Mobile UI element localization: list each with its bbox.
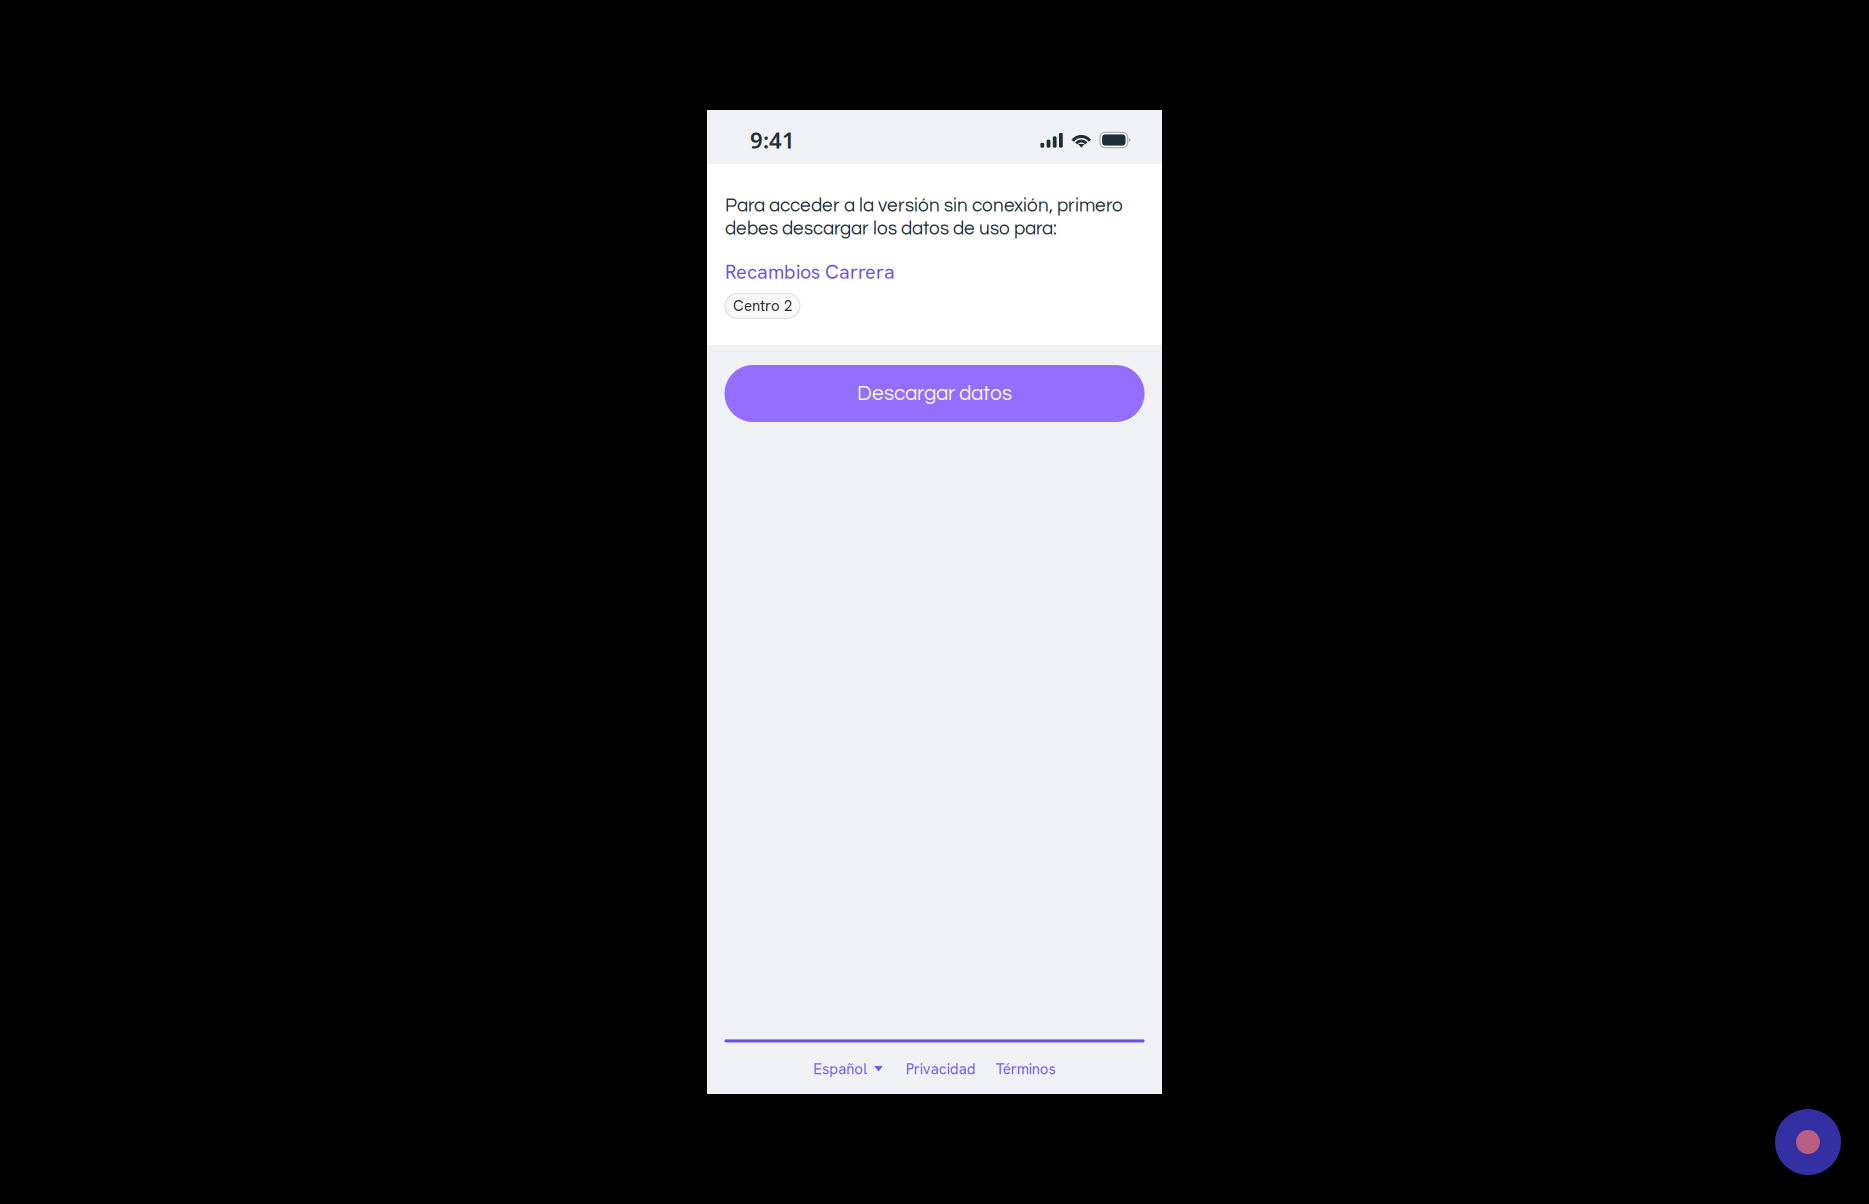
button[interactable]: Descargar datos [724, 365, 1144, 422]
button[interactable]: Record [1775, 1109, 1841, 1175]
staticText: Español [813, 1059, 867, 1079]
staticText: 9:41 [750, 125, 795, 155]
button[interactable]: Español [813, 1059, 883, 1079]
staticText: Términos [996, 1059, 1056, 1079]
staticText: Recambios Carrera [725, 259, 895, 285]
staticText: Privacidad [906, 1059, 976, 1079]
button[interactable]: Recambios Carrera [725, 261, 895, 282]
button[interactable]: Centro 2 [725, 293, 800, 318]
staticText: Descargar datos [857, 383, 1012, 404]
staticText: Para acceder a la versión sin conexión, … [725, 196, 1123, 238]
staticText: Centro 2 [733, 296, 792, 316]
button[interactable]: Términos [996, 1059, 1056, 1079]
button[interactable]: Privacidad [906, 1059, 976, 1079]
